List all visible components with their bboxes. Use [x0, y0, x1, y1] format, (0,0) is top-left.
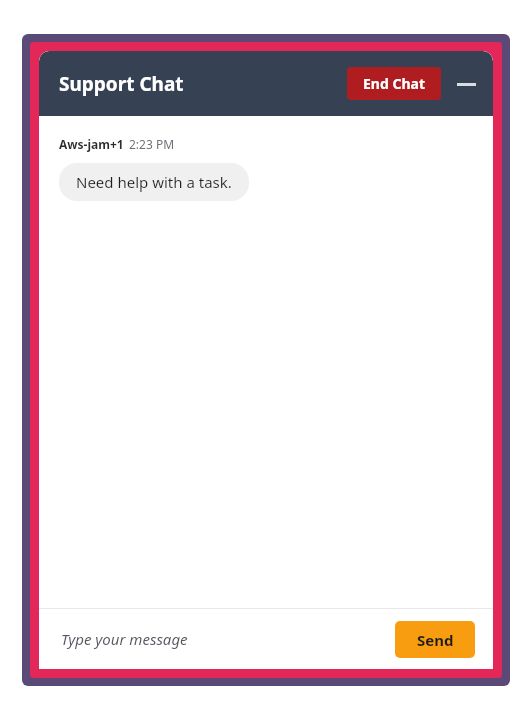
button[interactable]: Minimize	[453, 71, 479, 97]
button[interactable]: End Chat	[347, 67, 441, 100]
staticText: Support Chat	[59, 71, 184, 97]
staticText: 2:23 PM	[129, 136, 175, 152]
button[interactable]: Type your message	[61, 629, 395, 649]
button[interactable]: Send	[395, 621, 475, 658]
staticText: End Chat	[363, 74, 425, 93]
staticText: Type your message	[61, 629, 188, 649]
staticText: Need help with a task.	[76, 172, 232, 192]
button[interactable]: Need help with a task.	[59, 163, 249, 201]
staticText: Send	[417, 630, 454, 650]
staticText: Aws-jam+1	[59, 136, 124, 152]
